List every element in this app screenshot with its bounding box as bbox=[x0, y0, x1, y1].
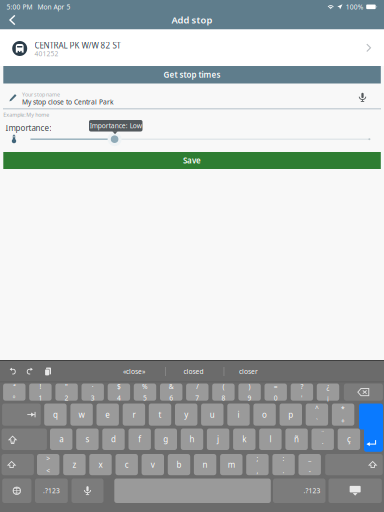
staticText: p bbox=[288, 409, 293, 420]
button[interactable]: ! bbox=[29, 383, 52, 401]
button[interactable]: j bbox=[207, 428, 229, 450]
staticText: ¿ bbox=[326, 382, 329, 391]
button[interactable]: Undo bbox=[5, 363, 21, 379]
button[interactable]: Paste bbox=[38, 363, 54, 379]
staticText: r bbox=[132, 409, 135, 420]
button[interactable]: g bbox=[155, 428, 177, 450]
button[interactable]: e bbox=[96, 403, 119, 426]
button[interactable]: ç bbox=[338, 428, 360, 450]
button[interactable]: ) bbox=[238, 383, 261, 401]
button[interactable]: · bbox=[81, 383, 104, 401]
button[interactable]: ? bbox=[291, 383, 313, 401]
staticText: 6 bbox=[169, 393, 173, 402]
button[interactable]: Dictate bbox=[355, 90, 369, 104]
button[interactable]: CENTRAL PK W/W 82 ST bbox=[0, 29, 384, 66]
staticText: 7 bbox=[195, 393, 199, 402]
button[interactable]: z bbox=[63, 454, 86, 475]
button[interactable]: $ bbox=[108, 383, 130, 401]
staticText: 5 bbox=[143, 393, 147, 402]
staticText: ç bbox=[347, 434, 351, 444]
button[interactable]: ( bbox=[212, 383, 235, 401]
staticText: 4 bbox=[117, 393, 121, 402]
staticText: ; bbox=[256, 454, 258, 463]
button[interactable] bbox=[344, 383, 383, 401]
staticText: % bbox=[142, 382, 148, 391]
button[interactable]: % bbox=[134, 383, 156, 401]
button[interactable]: x bbox=[89, 454, 112, 475]
staticText: ' bbox=[301, 393, 303, 402]
button[interactable]: ¿ bbox=[317, 383, 339, 401]
button[interactable]: .?123 bbox=[35, 478, 68, 503]
button[interactable]: p bbox=[280, 403, 302, 426]
button[interactable]: _ bbox=[298, 454, 321, 475]
staticText: Your stop name bbox=[22, 91, 60, 98]
staticText: . bbox=[283, 466, 285, 475]
button[interactable]: r bbox=[123, 403, 145, 426]
button[interactable]: n bbox=[194, 454, 216, 475]
staticText: & bbox=[169, 382, 174, 391]
button[interactable] bbox=[2, 454, 34, 475]
button[interactable]: / bbox=[186, 383, 208, 401]
staticText: .?123 bbox=[43, 486, 60, 495]
button[interactable]: «close» bbox=[105, 361, 163, 382]
button[interactable]: Get stop times bbox=[3, 66, 381, 83]
button[interactable]: d bbox=[102, 428, 125, 450]
staticText: k bbox=[242, 434, 246, 444]
button[interactable]: = bbox=[264, 383, 287, 401]
button[interactable]: ñ bbox=[285, 428, 308, 450]
button[interactable]: b bbox=[168, 454, 190, 475]
button[interactable]: Return bbox=[359, 403, 383, 452]
button[interactable]: > bbox=[37, 454, 59, 475]
button[interactable]: Back bbox=[1, 11, 23, 28]
button[interactable]: ¨ bbox=[311, 428, 334, 450]
staticText: 8 bbox=[221, 393, 225, 402]
staticText: º bbox=[13, 393, 16, 402]
staticText: + bbox=[341, 416, 345, 425]
staticText: o bbox=[262, 409, 267, 420]
staticText: m bbox=[228, 459, 235, 470]
button[interactable]: Save bbox=[3, 152, 381, 169]
button[interactable]: : bbox=[272, 454, 295, 475]
button[interactable]: q bbox=[44, 403, 67, 426]
staticText: Example: My home bbox=[3, 111, 49, 118]
button[interactable]: & bbox=[160, 383, 182, 401]
button[interactable] bbox=[2, 428, 47, 450]
button[interactable]: Redo bbox=[21, 363, 37, 379]
button[interactable]: ^ bbox=[306, 403, 328, 426]
button[interactable]: .?123 bbox=[273, 478, 325, 503]
staticText: «close» bbox=[123, 367, 145, 376]
button[interactable]: v bbox=[142, 454, 164, 475]
button[interactable] bbox=[71, 478, 103, 503]
button[interactable]: w bbox=[70, 403, 93, 426]
button[interactable] bbox=[2, 403, 41, 426]
button[interactable]: i bbox=[227, 403, 250, 426]
button[interactable]: k bbox=[233, 428, 255, 450]
staticText: · bbox=[92, 382, 94, 391]
staticText: 401252 bbox=[34, 49, 58, 58]
button[interactable] bbox=[114, 478, 271, 503]
button[interactable]: ª bbox=[3, 383, 25, 401]
button[interactable]: m bbox=[220, 454, 242, 475]
button[interactable]: closed bbox=[164, 361, 222, 382]
button[interactable]: l bbox=[259, 428, 282, 450]
button[interactable]: * bbox=[332, 403, 354, 426]
button[interactable]: f bbox=[128, 428, 151, 450]
staticText: * bbox=[341, 404, 345, 413]
button[interactable] bbox=[325, 454, 383, 475]
button[interactable]: t bbox=[149, 403, 171, 426]
button[interactable] bbox=[2, 478, 31, 503]
button[interactable]: s bbox=[76, 428, 99, 450]
button[interactable]: h bbox=[181, 428, 203, 450]
button[interactable] bbox=[328, 478, 382, 503]
button[interactable]: a bbox=[50, 428, 72, 450]
button[interactable]: " bbox=[55, 383, 78, 401]
staticText: b bbox=[176, 459, 181, 470]
button[interactable]: ; bbox=[246, 454, 269, 475]
button[interactable]: u bbox=[201, 403, 223, 426]
button[interactable]: closer bbox=[219, 361, 277, 382]
staticText: closer bbox=[239, 367, 258, 376]
button[interactable]: c bbox=[115, 454, 138, 475]
button[interactable]: y bbox=[175, 403, 197, 426]
button[interactable]: o bbox=[253, 403, 276, 426]
staticText: ¡ bbox=[327, 393, 329, 402]
